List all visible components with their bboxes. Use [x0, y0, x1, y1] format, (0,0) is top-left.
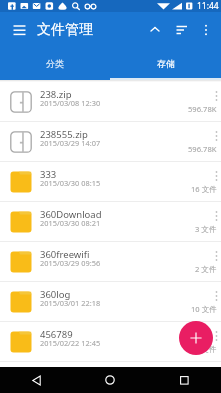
button[interactable]: 333 [0, 162, 221, 201]
staticText: 333 [40, 168, 57, 181]
staticText: 3 文件 [195, 224, 217, 234]
staticText: 存储 [157, 58, 175, 69]
staticText: 2015/03/01 22:18 [40, 298, 101, 308]
staticText: 360log [40, 288, 71, 301]
button[interactable]: More options [195, 19, 217, 41]
staticText: 360Download [40, 208, 102, 221]
button[interactable]: More [207, 242, 221, 264]
button[interactable]: 238.zip [0, 82, 221, 121]
staticText: 16 文件 [191, 184, 217, 194]
button[interactable]: Back [0, 367, 73, 393]
button[interactable]: Sort [170, 18, 194, 42]
button[interactable]: 360log [0, 282, 221, 321]
button[interactable]: Menu [8, 19, 30, 41]
button[interactable]: 456789 [0, 322, 221, 361]
staticText: 2015/03/30 08:15 [40, 178, 101, 188]
button[interactable]: More [207, 122, 221, 144]
staticText: 2015/03/08 12:30 [40, 98, 101, 108]
button[interactable]: More [207, 162, 221, 184]
button[interactable]: 360Download [0, 202, 221, 241]
staticText: 238.zip [40, 88, 72, 101]
button[interactable]: Home [73, 367, 147, 393]
staticText: 2015/02/22 12:45 [40, 338, 101, 348]
staticText: 2 文件 [195, 264, 217, 274]
staticText: 文件管理 [37, 21, 93, 39]
button[interactable]: 分类 [0, 47, 110, 80]
button[interactable]: 360freewifi [0, 242, 221, 281]
staticText: 238555.zip [40, 128, 88, 141]
button[interactable]: Add [179, 321, 213, 355]
staticText: 596.78K [188, 144, 217, 154]
button[interactable]: More [207, 82, 221, 104]
staticText: 2015/03/30 08:21 [40, 218, 101, 228]
staticText: 11:44 [197, 0, 219, 12]
button[interactable]: More [207, 322, 221, 344]
button[interactable]: Recents [147, 367, 221, 393]
button[interactable]: 存储 [110, 47, 221, 80]
button[interactable]: More [207, 202, 221, 224]
staticText: 分类 [46, 58, 64, 69]
staticText: 3 文件 [195, 344, 217, 354]
staticText: 2015/03/29 09:56 [40, 258, 101, 268]
staticText: 10 文件 [191, 304, 217, 314]
button[interactable]: Collapse [143, 18, 167, 42]
staticText: 596.78K [188, 104, 217, 114]
staticText: 2015/03/29 14:07 [40, 138, 101, 148]
button[interactable]: More [207, 282, 221, 304]
staticText: 456789 [40, 328, 73, 341]
button[interactable]: 238555.zip [0, 122, 221, 161]
staticText: 360freewifi [40, 248, 90, 261]
